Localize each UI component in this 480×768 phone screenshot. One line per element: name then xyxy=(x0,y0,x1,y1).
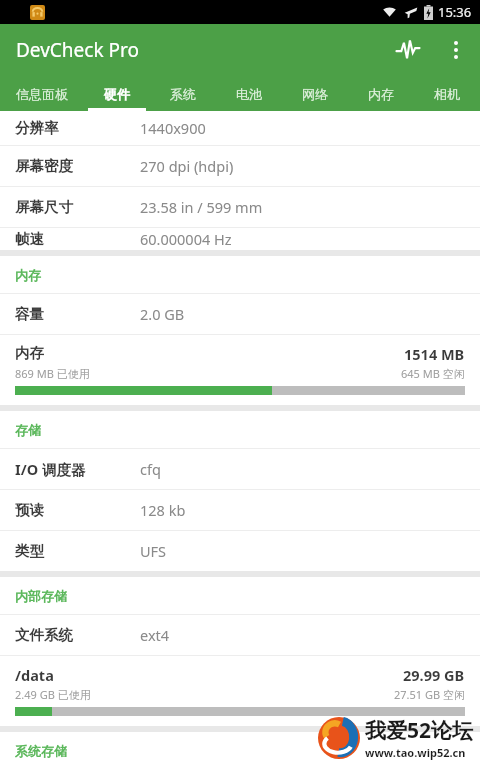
staticText: ext4 xyxy=(140,625,170,645)
button[interactable]: /data xyxy=(0,656,480,726)
staticText: 内存 xyxy=(368,86,394,102)
staticText: 1440x900 xyxy=(140,118,206,138)
staticText: 信息面板 xyxy=(16,86,68,102)
button[interactable]: 信息面板 xyxy=(0,76,84,111)
staticText: 2.49 GB 已使用 xyxy=(15,687,91,702)
button[interactable]: 网络 xyxy=(282,76,348,111)
staticText: 预读 xyxy=(15,501,140,519)
staticText: /data xyxy=(15,665,54,685)
staticText: 60.000004 Hz xyxy=(140,229,232,249)
staticText: UFS xyxy=(140,541,167,561)
staticText: 帧速 xyxy=(15,230,140,248)
staticText: 内部存储 xyxy=(15,588,67,604)
staticText: 2.0 GB xyxy=(140,304,185,324)
staticText: 128 kb xyxy=(140,500,186,520)
staticText: 内存 xyxy=(15,267,41,283)
button[interactable]: 内存 xyxy=(0,335,480,405)
button[interactable]: 帧速 xyxy=(0,228,480,250)
button[interactable]: 系统 xyxy=(150,76,216,111)
button[interactable]: Monitor xyxy=(384,26,432,74)
staticText: 分辨率 xyxy=(15,119,140,137)
staticText: 硬件 xyxy=(104,86,130,102)
staticText: 23.58 in / 599 mm xyxy=(140,197,263,217)
button[interactable]: I/O 调度器 xyxy=(0,449,480,489)
button[interactable]: 内存 xyxy=(348,76,414,111)
staticText: 屏幕尺寸 xyxy=(15,198,140,216)
staticText: 869 MB 已使用 xyxy=(15,366,90,381)
button[interactable]: 电池 xyxy=(216,76,282,111)
button[interactable]: 容量 xyxy=(0,294,480,334)
staticText: 类型 xyxy=(15,542,140,560)
staticText: 27.51 GB 空闲 xyxy=(394,687,465,702)
staticText: 系统 xyxy=(170,86,196,102)
button[interactable]: 类型 xyxy=(0,531,480,571)
staticText: 系统存储 xyxy=(15,743,67,758)
staticText: 内存 xyxy=(15,344,44,362)
button[interactable]: 分辨率 xyxy=(0,111,480,145)
staticText: I/O 调度器 xyxy=(15,459,140,479)
staticText: 存储 xyxy=(15,422,41,438)
staticText: 1514 MB xyxy=(404,344,465,364)
staticText: 645 MB 空闲 xyxy=(401,366,465,381)
staticText: cfq xyxy=(140,459,161,479)
button[interactable]: 文件系统 xyxy=(0,615,480,655)
button[interactable]: 屏幕密度 xyxy=(0,146,480,186)
staticText: 文件系统 xyxy=(15,626,140,644)
button[interactable]: 预读 xyxy=(0,490,480,530)
staticText: 相机 xyxy=(434,86,460,102)
button[interactable]: 相机 xyxy=(414,76,480,111)
staticText: 15:36 xyxy=(438,3,472,21)
staticText: 我爱52论坛 xyxy=(365,716,474,745)
staticText: 29.99 GB xyxy=(403,665,465,685)
staticText: DevCheck Pro xyxy=(16,37,139,63)
button[interactable]: 屏幕尺寸 xyxy=(0,187,480,227)
staticText: www.tao.wip52.cn xyxy=(365,745,466,760)
staticText: 网络 xyxy=(302,86,328,102)
button[interactable]: 硬件 xyxy=(84,76,150,111)
button[interactable]: More options xyxy=(432,26,480,74)
staticText: 屏幕密度 xyxy=(15,157,140,175)
staticText: 电池 xyxy=(236,86,262,102)
staticText: 270 dpi (hdpi) xyxy=(140,156,234,176)
staticText: 容量 xyxy=(15,305,140,323)
